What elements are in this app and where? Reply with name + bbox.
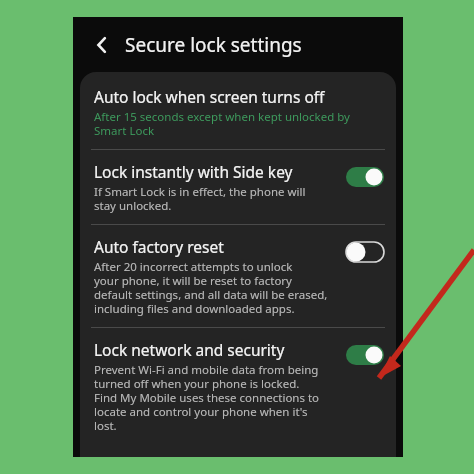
button[interactable]: Back bbox=[73, 17, 403, 72]
button[interactable]: Auto lock when screen turns off bbox=[80, 72, 396, 149]
staticText: Secure lock settings bbox=[125, 32, 302, 58]
button[interactable]: Toggle on bbox=[346, 345, 384, 365]
button[interactable]: Lock network and security bbox=[80, 328, 396, 444]
staticText: Lock network and security bbox=[94, 339, 285, 360]
button[interactable]: Toggle off bbox=[346, 242, 384, 262]
button[interactable]: Back bbox=[85, 28, 119, 62]
button[interactable]: Toggle on bbox=[346, 167, 384, 187]
button[interactable]: Lock instantly with Side key bbox=[80, 150, 396, 224]
staticText: After 15 seconds except when kept unlock… bbox=[94, 109, 350, 138]
staticText: After 20 incorrect attempts to unlock yo… bbox=[94, 259, 328, 316]
staticText: Auto factory reset bbox=[94, 236, 224, 257]
staticText: Prevent Wi-Fi and mobile data from being… bbox=[94, 362, 320, 433]
staticText: If Smart Lock is in effect, the phone wi… bbox=[94, 184, 306, 213]
button[interactable]: Auto factory reset bbox=[80, 225, 396, 327]
staticText: Lock instantly with Side key bbox=[94, 161, 293, 182]
staticText: Auto lock when screen turns off bbox=[94, 86, 325, 107]
